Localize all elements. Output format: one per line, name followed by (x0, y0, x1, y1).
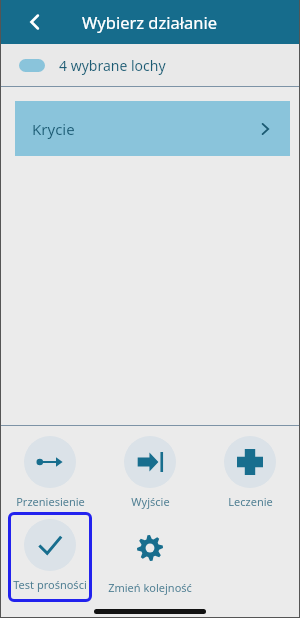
staticText: Wybierz działanie (82, 11, 218, 33)
staticText: Test prośności (13, 577, 87, 592)
staticText: 4 wybrane lochy (59, 56, 166, 75)
button[interactable]: Back (22, 9, 48, 35)
button[interactable]: Zmień kolejność (100, 512, 200, 595)
button[interactable]: Test prośności (8, 512, 92, 602)
staticText: Wyjście (131, 494, 170, 509)
button[interactable]: Krycie (15, 101, 290, 156)
staticText: Przeniesienie (16, 494, 85, 509)
button[interactable]: Przeniesienie (0, 432, 100, 509)
button[interactable]: 4 wybrane lochy (0, 44, 300, 86)
staticText: Leczenie (228, 494, 273, 509)
staticText: Krycie (32, 119, 75, 139)
button[interactable]: Wyjście (100, 432, 200, 509)
button[interactable]: Leczenie (200, 432, 300, 509)
staticText: Zmień kolejność (108, 580, 192, 595)
